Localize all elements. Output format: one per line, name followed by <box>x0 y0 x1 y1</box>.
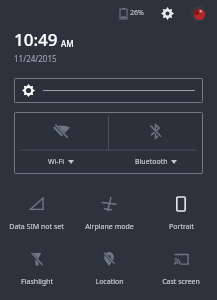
other: Battery <box>120 8 127 19</box>
button[interactable]: Wi-Fi <box>14 112 108 174</box>
button[interactable]: User profile <box>189 4 207 22</box>
staticText: 10:49 <box>14 28 58 51</box>
staticText: Airplane mode <box>85 222 134 232</box>
button[interactable]: Settings <box>157 3 177 23</box>
staticText: Wi-Fi <box>48 157 65 167</box>
staticText: 11/24/2015 <box>14 53 57 64</box>
staticText: Data SIM not set <box>9 222 64 232</box>
staticText: Portrait <box>169 222 194 232</box>
button[interactable]: Cast screen <box>145 239 217 294</box>
staticText: Location <box>95 277 124 287</box>
button[interactable]: Data SIM not set <box>0 184 73 239</box>
staticText: AM <box>61 38 74 49</box>
button[interactable]: Brightness <box>14 78 203 103</box>
button[interactable]: Portrait <box>145 184 217 239</box>
staticText: Cast screen <box>162 277 200 287</box>
staticText: Bluetooth <box>135 157 168 167</box>
button[interactable]: Location <box>73 239 145 294</box>
staticText: Flashlight <box>21 277 53 287</box>
button[interactable]: Flashlight <box>0 239 73 294</box>
staticText: 26% <box>130 8 144 18</box>
button[interactable]: Airplane mode <box>73 184 145 239</box>
button[interactable]: Bluetooth <box>108 112 203 174</box>
